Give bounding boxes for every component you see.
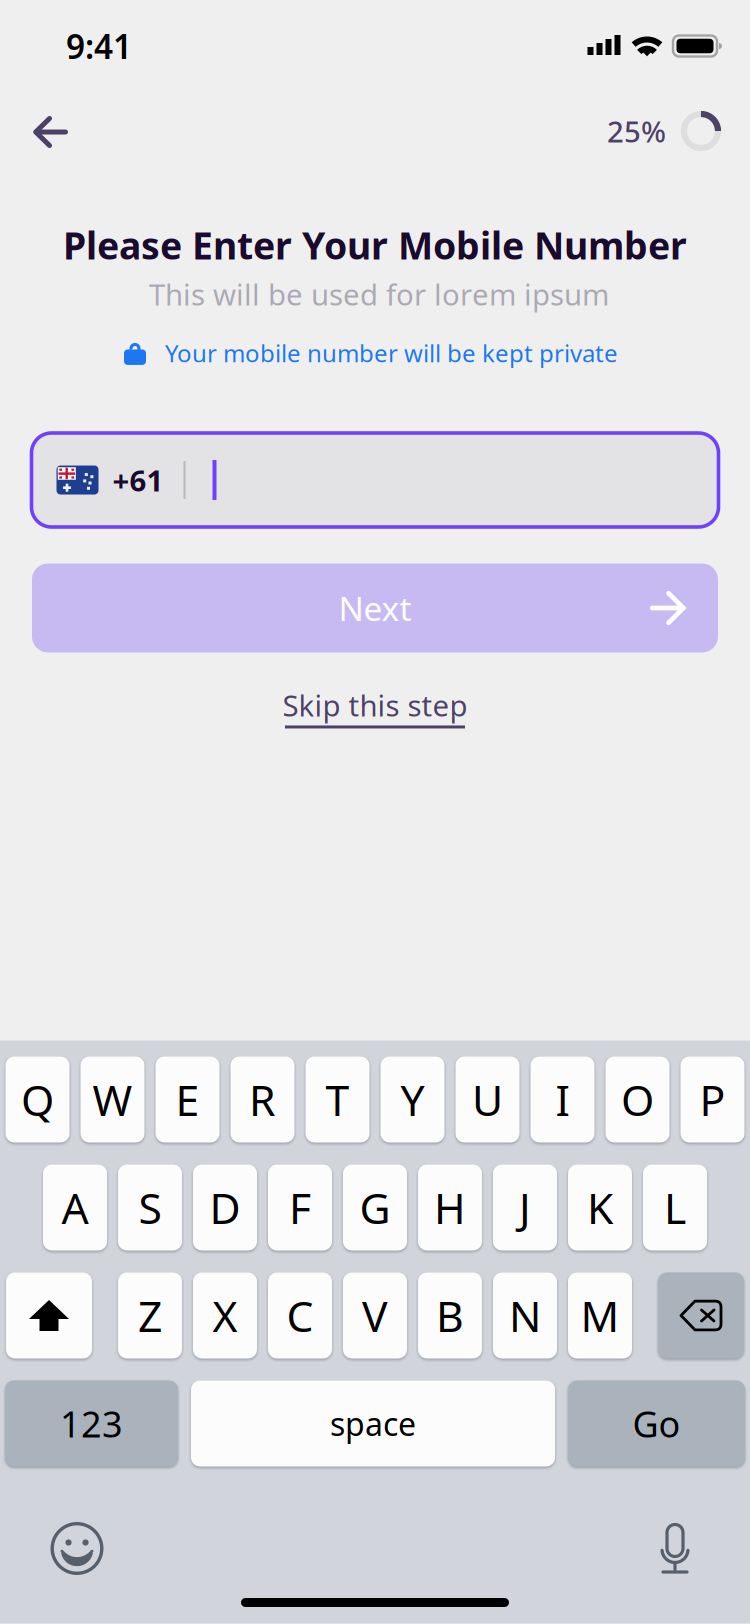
button[interactable]: Delete — [658, 1272, 744, 1358]
button[interactable]: 25% — [607, 101, 721, 161]
button[interactable]: G — [343, 1164, 407, 1250]
button[interactable]: F — [268, 1164, 332, 1250]
staticText: N — [509, 1287, 541, 1344]
button[interactable]: Back — [13, 100, 85, 164]
staticText: Next — [338, 586, 411, 630]
button[interactable]: space — [191, 1380, 555, 1466]
button[interactable]: E — [155, 1056, 219, 1142]
button[interactable]: K — [568, 1164, 632, 1250]
staticText: E — [175, 1071, 199, 1128]
staticText: K — [587, 1179, 613, 1236]
button[interactable]: X — [193, 1272, 257, 1358]
staticText: W — [92, 1071, 132, 1128]
button[interactable]: Z — [118, 1272, 182, 1358]
button[interactable]: Go — [568, 1380, 745, 1466]
staticText: G — [359, 1179, 390, 1236]
staticText: L — [664, 1179, 686, 1236]
staticText: This will be used for lorem ipsum — [149, 274, 609, 313]
staticText: J — [519, 1179, 531, 1236]
button[interactable]: B — [418, 1272, 482, 1358]
staticText: Q — [21, 1071, 54, 1128]
staticText: A — [61, 1179, 88, 1236]
button[interactable]: Emoji keyboard — [35, 1511, 119, 1585]
button[interactable]: Next — [32, 563, 718, 652]
staticText: Z — [138, 1287, 162, 1344]
staticText: O — [621, 1071, 654, 1128]
staticText: C — [286, 1287, 313, 1344]
button[interactable]: R — [230, 1056, 294, 1142]
button[interactable]: V — [343, 1272, 407, 1358]
button[interactable]: Y — [380, 1056, 444, 1142]
staticText: I — [555, 1071, 569, 1128]
button[interactable]: M — [568, 1272, 632, 1358]
staticText: V — [362, 1287, 388, 1344]
button[interactable]: 123 — [5, 1380, 178, 1466]
staticText: S — [138, 1179, 161, 1236]
staticText: Please Enter Your Mobile Number — [63, 220, 687, 270]
staticText: 123 — [60, 1400, 123, 1447]
button[interactable]: L — [643, 1164, 707, 1250]
staticText: Y — [400, 1071, 424, 1128]
staticText: P — [699, 1071, 725, 1128]
button[interactable]: N — [493, 1272, 557, 1358]
staticText: 9:41 — [66, 24, 132, 68]
staticText: D — [209, 1179, 240, 1236]
staticText: Skip this step — [282, 685, 467, 724]
staticText: +61 — [112, 460, 163, 499]
button[interactable]: Mobile number, +61 — [31, 433, 718, 527]
button[interactable]: J — [493, 1164, 557, 1250]
button[interactable]: I — [530, 1056, 594, 1142]
button[interactable]: T — [305, 1056, 369, 1142]
staticText: 25% — [607, 111, 666, 150]
button[interactable]: C — [268, 1272, 332, 1358]
button[interactable]: S — [118, 1164, 182, 1250]
button[interactable]: H — [418, 1164, 482, 1250]
button[interactable]: W — [80, 1056, 144, 1142]
button[interactable]: A — [43, 1164, 107, 1250]
staticText: space — [330, 1402, 416, 1445]
staticText: U — [472, 1071, 503, 1128]
button[interactable]: P — [680, 1056, 744, 1142]
staticText: H — [434, 1179, 466, 1236]
button[interactable]: D — [193, 1164, 257, 1250]
button[interactable]: U — [455, 1056, 519, 1142]
button[interactable]: Skip this step — [225, 677, 525, 737]
staticText: R — [249, 1071, 276, 1128]
staticText: T — [325, 1071, 349, 1128]
button[interactable]: Dictation — [638, 1511, 712, 1585]
button[interactable]: Shift — [6, 1272, 92, 1358]
button[interactable]: Q — [5, 1056, 69, 1142]
staticText: F — [289, 1179, 311, 1236]
staticText: M — [580, 1287, 619, 1344]
staticText: Your mobile number will be kept private — [165, 337, 618, 369]
staticText: X — [212, 1287, 237, 1344]
staticText: Go — [632, 1400, 680, 1447]
staticText: B — [436, 1287, 464, 1344]
button[interactable]: O — [605, 1056, 669, 1142]
